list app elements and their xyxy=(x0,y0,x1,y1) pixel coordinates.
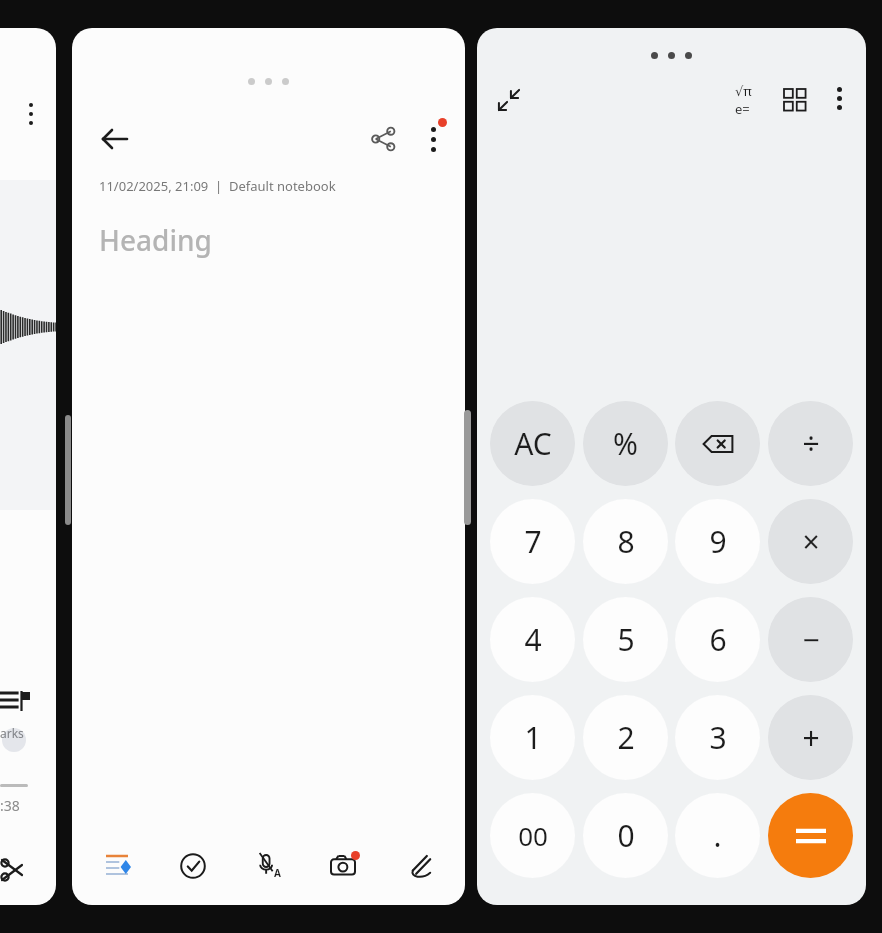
staticText: 00 xyxy=(518,818,548,853)
staticText: AC xyxy=(514,423,552,464)
staticText: √π xyxy=(735,82,752,100)
button[interactable]: AC xyxy=(490,401,575,486)
button[interactable]: 6 xyxy=(675,597,760,682)
button[interactable]: History xyxy=(767,72,823,128)
button[interactable]: 7 xyxy=(490,499,575,584)
button[interactable]: 1 xyxy=(490,695,575,780)
button[interactable]: More options xyxy=(813,72,865,124)
staticText: × xyxy=(802,521,820,562)
staticText: 0 xyxy=(617,815,635,856)
staticText: :38 xyxy=(0,796,20,815)
button[interactable]: × xyxy=(768,499,853,584)
button[interactable]: 8 xyxy=(583,499,668,584)
button[interactable]: . xyxy=(675,793,760,878)
staticText: 4 xyxy=(524,619,542,660)
staticText: Heading xyxy=(99,221,212,259)
staticText: ÷ xyxy=(802,423,820,464)
button[interactable]: 2 xyxy=(583,695,668,780)
button[interactable]: Text format xyxy=(90,838,146,894)
button[interactable]: 4 xyxy=(490,597,575,682)
button[interactable]: Resize left xyxy=(65,415,71,525)
button[interactable]: % xyxy=(583,401,668,486)
staticText: 1 xyxy=(524,717,542,758)
button[interactable]: − xyxy=(768,597,853,682)
button[interactable]: ÷ xyxy=(768,401,853,486)
staticText: A xyxy=(274,866,281,880)
staticText: . xyxy=(713,815,722,856)
button[interactable]: Backspace xyxy=(675,401,760,486)
staticText: 2 xyxy=(617,717,635,758)
staticText: 8 xyxy=(617,521,635,562)
button[interactable]: More options xyxy=(23,103,39,143)
button[interactable]: Share xyxy=(354,110,412,168)
staticText: + xyxy=(802,717,820,758)
staticText: 6 xyxy=(709,619,727,660)
button[interactable]: Draw xyxy=(391,838,447,894)
staticText: e= xyxy=(735,100,750,118)
staticText: 11/02/2025, 21:09 | Default notebook xyxy=(99,177,336,195)
button[interactable]: 0 xyxy=(583,793,668,878)
button[interactable]: Resize right xyxy=(464,410,471,525)
button[interactable]: Camera xyxy=(316,838,372,894)
button[interactable]: Voice xyxy=(241,838,297,894)
button[interactable]: Checklist xyxy=(165,838,221,894)
button[interactable]: 9 xyxy=(675,499,760,584)
button[interactable]: 3 xyxy=(675,695,760,780)
staticText: 9 xyxy=(709,521,727,562)
button[interactable]: 5 xyxy=(583,597,668,682)
staticText: 7 xyxy=(524,521,542,562)
button[interactable] xyxy=(768,793,853,878)
button[interactable]: + xyxy=(768,695,853,780)
staticText: 5 xyxy=(617,619,635,660)
staticText: % xyxy=(613,423,638,464)
button[interactable]: More options xyxy=(404,110,462,168)
staticText: − xyxy=(802,619,820,660)
button[interactable]: 00 xyxy=(490,793,575,878)
staticText: arks xyxy=(0,725,24,741)
button[interactable]: Scientific xyxy=(715,72,771,128)
button[interactable]: Back xyxy=(86,110,144,168)
staticText: 3 xyxy=(709,717,727,758)
button[interactable]: Collapse xyxy=(481,72,537,128)
